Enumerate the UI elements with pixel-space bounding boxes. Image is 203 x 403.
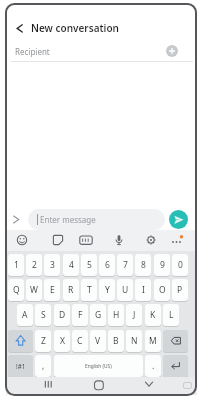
button[interactable]: !#1 bbox=[8, 355, 33, 377]
staticText: English (US) bbox=[85, 363, 112, 370]
staticText: 7 bbox=[123, 259, 128, 271]
button[interactable] bbox=[166, 45, 178, 57]
button[interactable] bbox=[163, 330, 188, 352]
staticText: K bbox=[150, 309, 156, 321]
staticText: L bbox=[169, 309, 174, 321]
staticText: 0 bbox=[178, 259, 183, 271]
button[interactable]: , bbox=[35, 355, 51, 377]
button[interactable] bbox=[91, 378, 107, 393]
staticText: Z bbox=[41, 335, 46, 347]
button[interactable] bbox=[8, 330, 33, 352]
staticText: X bbox=[60, 335, 65, 347]
button[interactable]: K bbox=[145, 304, 161, 326]
button[interactable] bbox=[141, 378, 157, 392]
button[interactable] bbox=[169, 210, 188, 229]
staticText: R bbox=[68, 284, 74, 296]
button[interactable]: V bbox=[90, 330, 106, 352]
button[interactable] bbox=[11, 214, 21, 225]
button[interactable] bbox=[16, 234, 28, 246]
button[interactable]: U bbox=[117, 279, 133, 301]
button[interactable]: 3 bbox=[44, 254, 60, 276]
button[interactable]: I bbox=[135, 279, 151, 301]
staticText: 4 bbox=[69, 259, 74, 271]
button[interactable] bbox=[40, 378, 57, 392]
button[interactable]: W bbox=[26, 279, 42, 301]
staticText: G bbox=[95, 309, 102, 321]
button[interactable] bbox=[79, 234, 93, 246]
staticText: I bbox=[142, 284, 145, 296]
staticText: !#1 bbox=[16, 362, 26, 370]
button[interactable] bbox=[163, 355, 188, 377]
button[interactable]: 1 bbox=[8, 254, 24, 276]
button[interactable]: 8 bbox=[135, 254, 151, 276]
staticText: Enter message bbox=[40, 214, 96, 225]
button[interactable]: D bbox=[54, 304, 70, 326]
button[interactable]: English (US) bbox=[54, 355, 143, 377]
button[interactable]: L bbox=[163, 304, 179, 326]
button[interactable]: T bbox=[81, 279, 97, 301]
button[interactable]: O bbox=[154, 279, 170, 301]
staticText: J bbox=[133, 309, 136, 321]
staticText: O bbox=[159, 284, 166, 296]
button[interactable]: G bbox=[90, 304, 106, 326]
button[interactable] bbox=[13, 21, 25, 35]
button[interactable]: Z bbox=[35, 330, 51, 352]
staticText: B bbox=[113, 335, 119, 347]
button[interactable]: F bbox=[72, 304, 88, 326]
button[interactable]: 6 bbox=[99, 254, 115, 276]
staticText: N bbox=[131, 335, 138, 347]
staticText: A bbox=[22, 309, 28, 321]
button[interactable]: Q bbox=[8, 279, 24, 301]
staticText: 5 bbox=[87, 259, 92, 271]
button[interactable]: 2 bbox=[26, 254, 42, 276]
button[interactable]: 9 bbox=[154, 254, 170, 276]
staticText: New conversation bbox=[31, 21, 119, 35]
staticText: U bbox=[122, 284, 129, 296]
staticText: F bbox=[78, 309, 83, 321]
button[interactable]: Y bbox=[99, 279, 115, 301]
button[interactable]: C bbox=[72, 330, 88, 352]
staticText: E bbox=[50, 284, 55, 296]
button[interactable]: X bbox=[54, 330, 70, 352]
staticText: 3 bbox=[50, 259, 55, 271]
button[interactable] bbox=[52, 234, 64, 246]
staticText: , bbox=[42, 360, 45, 372]
staticText: D bbox=[59, 309, 66, 321]
button[interactable]: N bbox=[126, 330, 142, 352]
staticText: Recipient bbox=[15, 46, 50, 57]
staticText: 6 bbox=[105, 259, 110, 271]
staticText: T bbox=[87, 284, 92, 296]
staticText: . bbox=[152, 360, 155, 372]
staticText: M bbox=[149, 335, 157, 347]
button[interactable] bbox=[145, 234, 157, 246]
button[interactable]: . bbox=[145, 355, 161, 377]
button[interactable] bbox=[182, 381, 193, 390]
button[interactable]: P bbox=[172, 279, 188, 301]
button[interactable]: 0 bbox=[172, 254, 188, 276]
button[interactable]: 5 bbox=[81, 254, 97, 276]
staticText: 8 bbox=[141, 259, 146, 271]
staticText: Q bbox=[13, 284, 20, 296]
button[interactable]: 7 bbox=[117, 254, 133, 276]
button[interactable] bbox=[171, 235, 184, 245]
staticText: 2 bbox=[32, 259, 37, 271]
button[interactable]: H bbox=[108, 304, 124, 326]
button[interactable]: M bbox=[145, 330, 161, 352]
button[interactable]: R bbox=[63, 279, 79, 301]
button[interactable]: B bbox=[108, 330, 124, 352]
button[interactable] bbox=[113, 234, 125, 247]
staticText: H bbox=[113, 309, 120, 321]
staticText: 1 bbox=[14, 259, 19, 271]
staticText: C bbox=[77, 335, 83, 347]
staticText: P bbox=[177, 284, 183, 296]
button[interactable]: A bbox=[17, 304, 33, 326]
button[interactable]: 4 bbox=[63, 254, 79, 276]
button[interactable]: S bbox=[35, 304, 51, 326]
staticText: Y bbox=[105, 284, 110, 296]
staticText: S bbox=[41, 309, 46, 321]
button[interactable]: J bbox=[126, 304, 142, 326]
staticText: V bbox=[95, 335, 101, 347]
button[interactable]: E bbox=[44, 279, 60, 301]
staticText: W bbox=[30, 284, 38, 296]
button[interactable]: Enter message bbox=[28, 209, 165, 230]
